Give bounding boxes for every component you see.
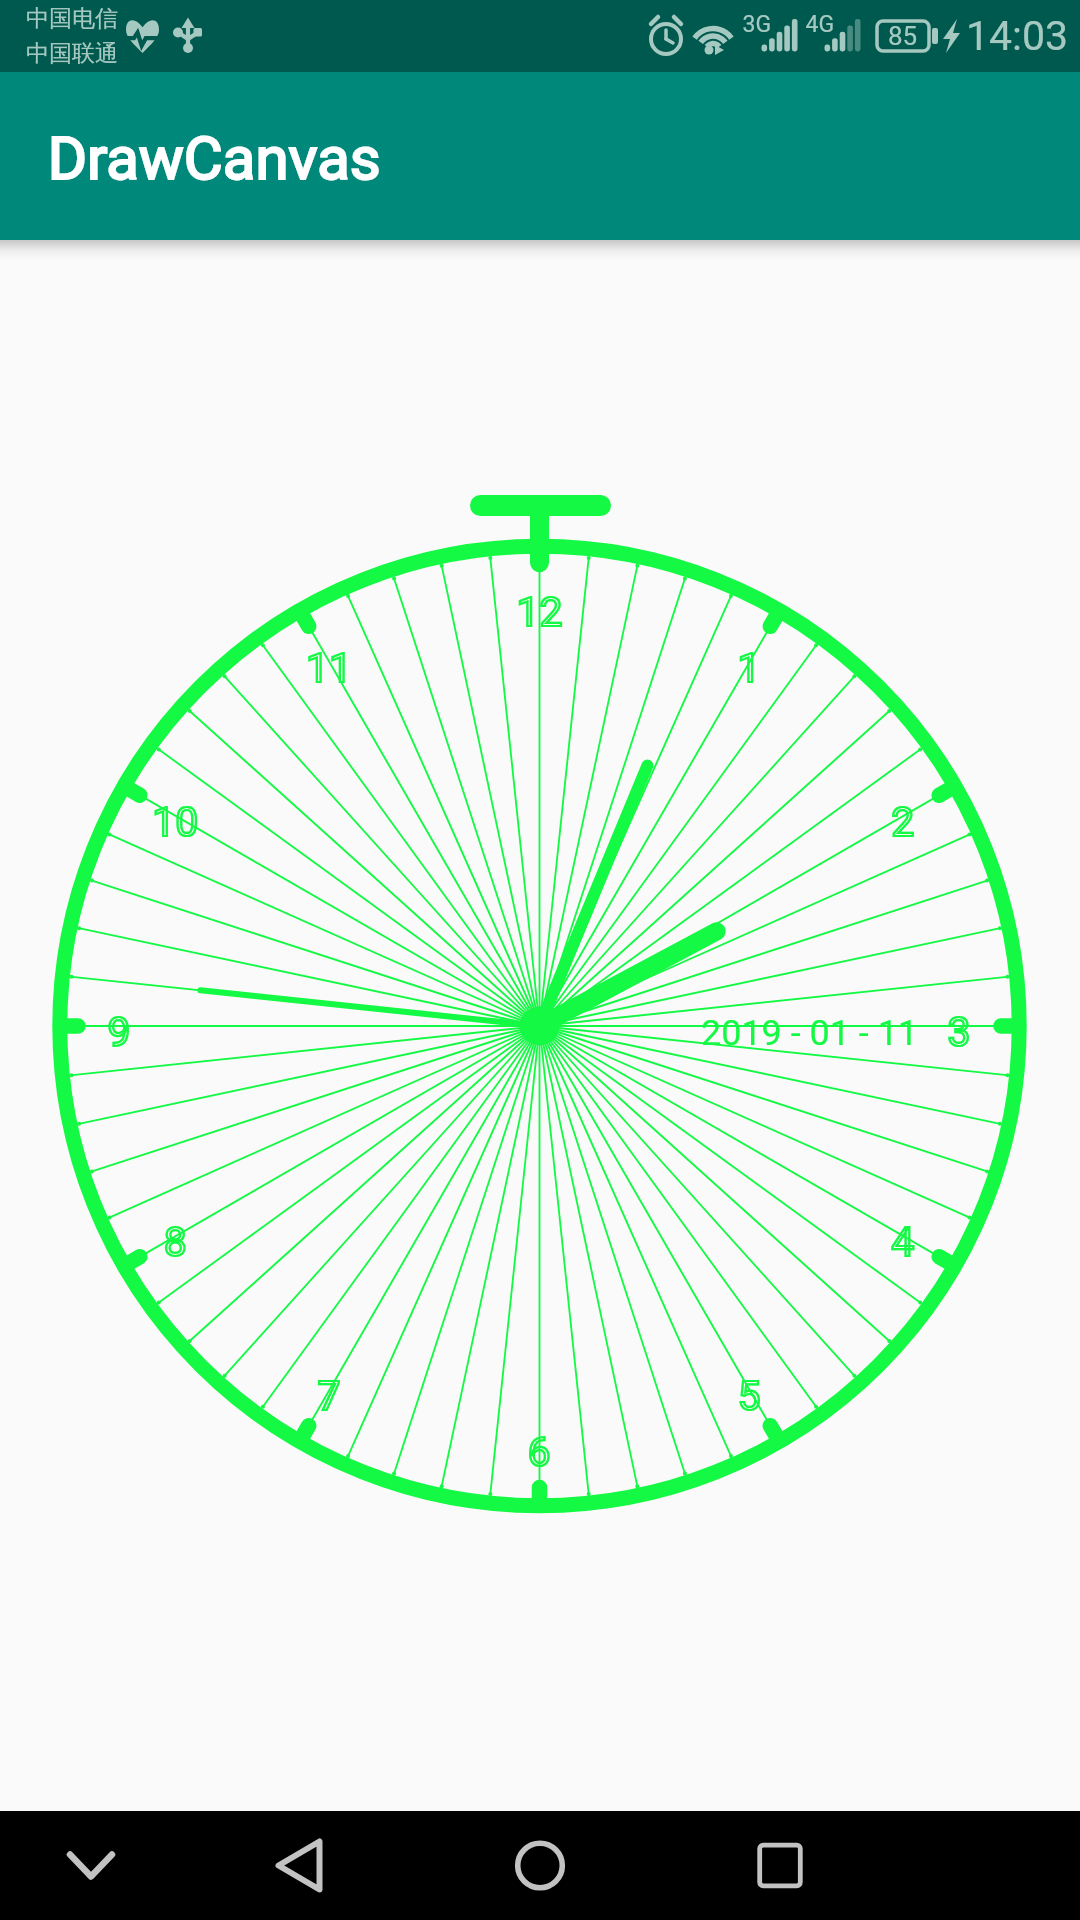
button[interactable]: [0, 72, 1080, 240]
button[interactable]: Hide keyboard: [37, 1811, 145, 1920]
button[interactable]: Home: [486, 1811, 594, 1920]
button[interactable]: Back: [245, 1811, 353, 1920]
button[interactable]: Recent apps: [726, 1811, 834, 1920]
button[interactable]: Analog clock face: [0, 240, 1080, 1811]
